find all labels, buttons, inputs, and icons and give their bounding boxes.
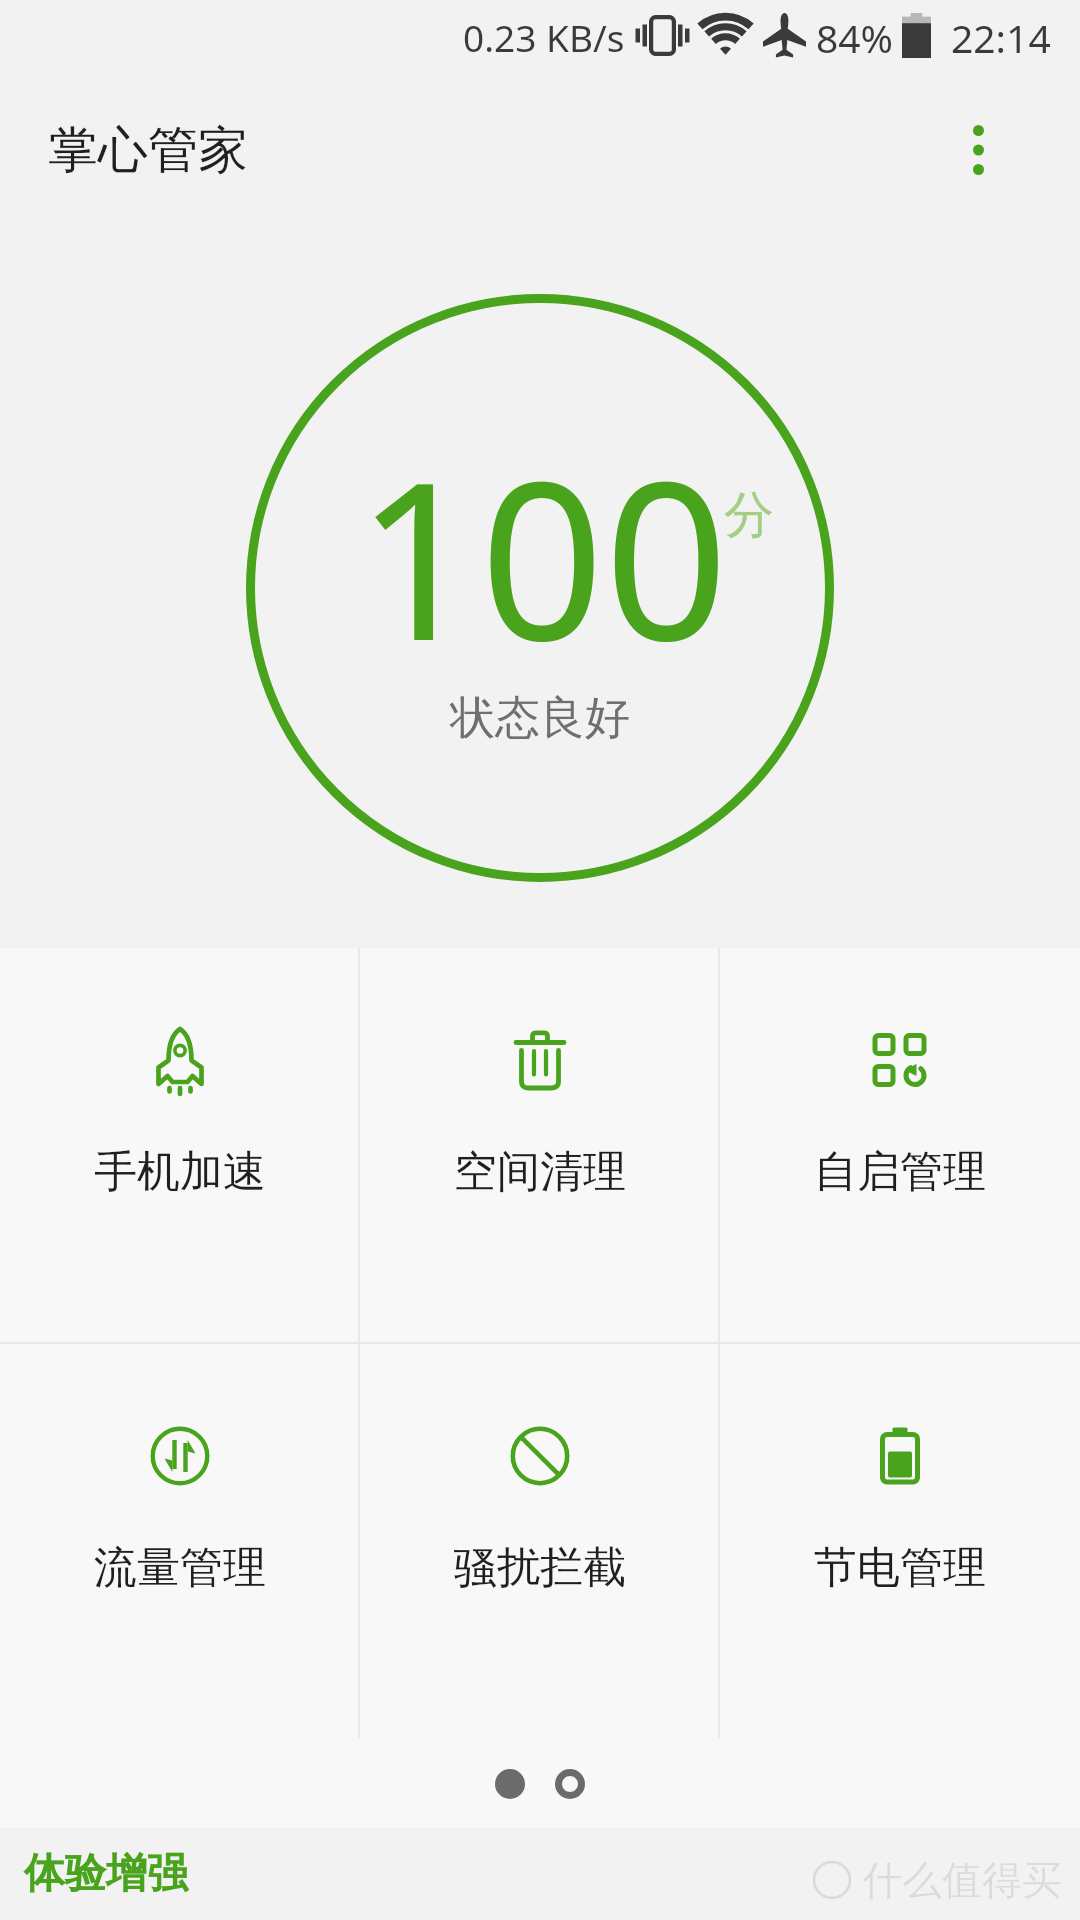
button[interactable]: 骚扰拦截: [360, 1344, 720, 1739]
staticText: 流量管理: [94, 1541, 266, 1595]
staticText: 22:14: [951, 11, 1051, 64]
staticText: 0.23 KB/s: [463, 12, 625, 62]
staticText: 分: [724, 484, 774, 547]
staticText: 100: [356, 408, 729, 704]
button[interactable]: 节电管理: [720, 1344, 1080, 1739]
staticText: 节电管理: [814, 1541, 986, 1595]
button[interactable]: Page 2: [555, 1769, 585, 1799]
staticText: 自启管理: [814, 1145, 986, 1199]
button[interactable]: 手机加速: [0, 948, 360, 1342]
staticText: 84%: [816, 11, 894, 64]
button[interactable]: 空间清理: [360, 948, 720, 1342]
button[interactable]: 体验增强: [24, 1848, 188, 1900]
button[interactable]: 流量管理: [0, 1344, 360, 1739]
staticText: 空间清理: [454, 1145, 626, 1199]
staticText: 状态良好: [450, 690, 630, 747]
button[interactable]: More options: [938, 110, 1018, 190]
staticText: 什么值得买: [862, 1855, 1062, 1905]
staticText: 掌心管家: [48, 119, 248, 182]
staticText: 手机加速: [94, 1145, 266, 1199]
staticText: 骚扰拦截: [454, 1541, 626, 1595]
button[interactable]: 自启管理: [720, 948, 1080, 1342]
button[interactable]: Page 1: [495, 1769, 525, 1799]
